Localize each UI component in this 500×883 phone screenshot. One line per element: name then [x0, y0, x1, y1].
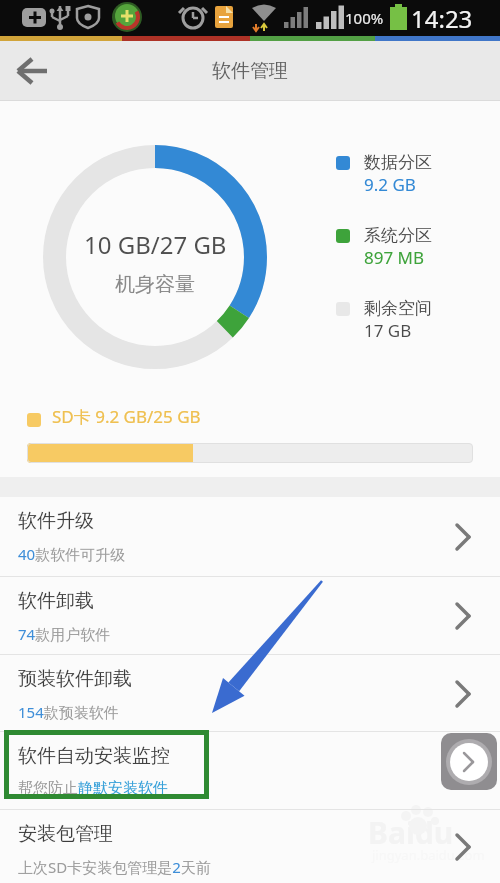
- button[interactable]: 软件升级: [0, 497, 500, 577]
- staticText: 系统分区: [364, 225, 432, 246]
- button[interactable]: 安装包管理: [0, 810, 500, 883]
- staticText: 软件管理: [212, 59, 288, 83]
- staticText: 40款软件可升级: [18, 544, 126, 564]
- staticText: 软件自动安装监控: [18, 744, 170, 768]
- button[interactable]: [0, 41, 70, 100]
- staticText: 14:23: [411, 2, 473, 35]
- staticText: 上次SD卡安装包管理是2天前: [18, 857, 211, 877]
- button[interactable]: 软件自动安装监控: [0, 732, 500, 810]
- staticText: 154款预装软件: [18, 702, 119, 722]
- staticText: 软件卸载: [18, 589, 94, 613]
- staticText: 剩余空间: [364, 298, 432, 319]
- staticText: 100%: [345, 8, 384, 28]
- staticText: Baidu: [368, 812, 454, 853]
- staticText: 机身容量: [115, 272, 195, 297]
- button[interactable]: 软件卸载: [0, 577, 500, 655]
- staticText: 10 GB/27 GB: [84, 228, 227, 261]
- staticText: 897 MB: [364, 246, 425, 269]
- staticText: 数据分区: [364, 152, 432, 173]
- staticText: 17 GB: [364, 319, 412, 342]
- staticText: 74款用户软件: [18, 624, 111, 644]
- staticText: 9.2 GB: [364, 173, 416, 196]
- button[interactable]: [441, 733, 497, 790]
- staticText: 软件升级: [18, 509, 94, 533]
- staticText: 帮您防止静默安装软件: [18, 779, 168, 798]
- staticText: jingyan.baidu.com: [372, 846, 485, 864]
- staticText: SD卡 9.2 GB/25 GB: [52, 405, 201, 428]
- staticText: 安装包管理: [18, 822, 113, 846]
- button[interactable]: 预装软件卸载: [0, 655, 500, 732]
- staticText: 预装软件卸载: [18, 667, 132, 691]
